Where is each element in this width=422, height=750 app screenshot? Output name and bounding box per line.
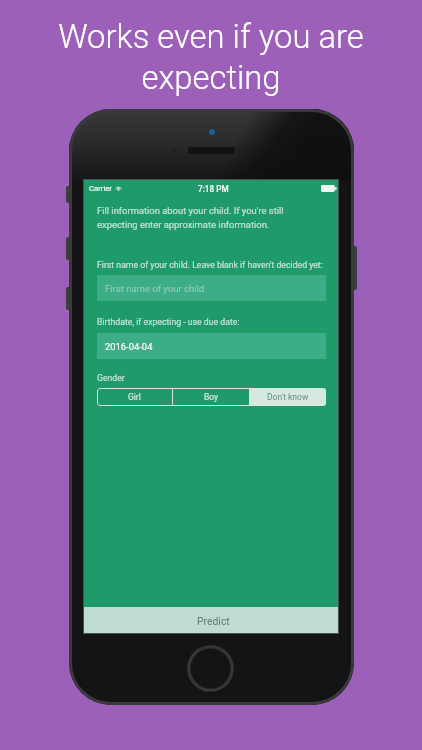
- staticText: Gender: [97, 373, 125, 383]
- button[interactable]: 2016-04-04: [97, 333, 326, 359]
- staticText: Boy: [204, 392, 219, 402]
- staticText: 2016-04-04: [105, 341, 153, 352]
- staticText: Don't know: [267, 392, 309, 402]
- button[interactable]: Don't know: [250, 388, 326, 406]
- button[interactable]: First name of your child: [97, 275, 326, 301]
- staticText: Birthdate, if expecting - use due date:: [97, 317, 240, 327]
- staticText: Carrier: [89, 184, 112, 193]
- staticText: Works even if you are expecting: [0, 18, 422, 97]
- staticText: First name of your child. Leave blank if…: [97, 260, 323, 270]
- button[interactable]: Boy: [173, 388, 249, 406]
- staticText: Girl: [128, 392, 141, 402]
- button[interactable]: Predict: [84, 607, 338, 633]
- staticText: Fill information about your child. If yo…: [97, 205, 312, 230]
- staticText: Predict: [197, 615, 230, 627]
- staticText: First name of your child: [105, 283, 205, 294]
- button[interactable]: Girl: [97, 388, 172, 406]
- staticText: 7:18 PM: [198, 184, 229, 194]
